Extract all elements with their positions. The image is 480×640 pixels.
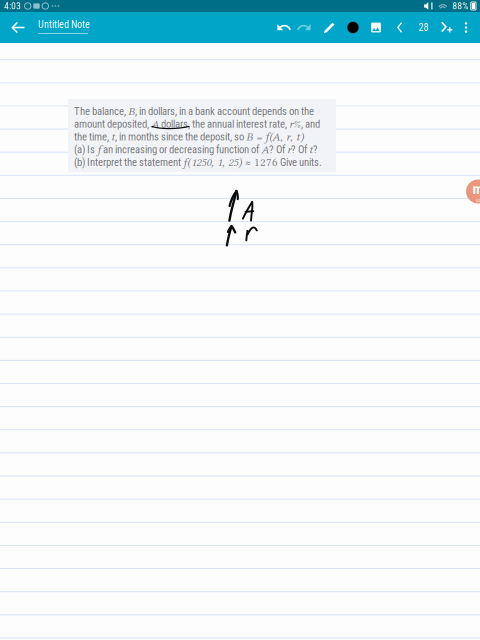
button[interactable]: 28 [410,12,436,43]
button[interactable]: Undo [272,12,296,43]
staticText: m [472,181,480,198]
button[interactable]: Untitled Note [38,12,94,43]
staticText: 28 [418,22,428,33]
button[interactable]: More options [457,12,475,43]
staticText: The balance, B, in dollars, in a bank ac… [74,104,314,118]
button[interactable]: Redo [292,12,316,43]
button[interactable]: Back [3,12,33,43]
button[interactable]: Previous page [389,12,409,43]
button[interactable]: Insert image [364,12,388,43]
staticText: ••• [51,1,60,11]
staticText: the time, t, in months since the deposit… [74,130,304,143]
staticText: sol [475,198,480,203]
button[interactable]: Pen [317,12,341,43]
staticText: 88% [452,0,468,12]
staticText: (b) Interpret the statement f(1250, 1, 2… [74,155,322,169]
staticText: (a) Is f an increasing or decreasing fun… [74,143,318,156]
button[interactable]: Add page [435,12,459,43]
staticText: amount deposited, A dollars, the annual … [74,117,320,130]
button[interactable]: Colour [341,12,365,43]
staticText: 4:03 [4,0,21,12]
staticText: Untitled Note [38,19,90,30]
